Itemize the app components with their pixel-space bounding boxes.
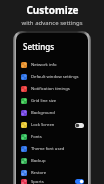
staticText: with advance settings bbox=[21, 19, 83, 27]
button[interactable]: Toggle off bbox=[75, 123, 84, 128]
staticText: Background bbox=[31, 110, 55, 116]
button[interactable]: Network info bbox=[16, 59, 88, 71]
button[interactable]: Lock Screen bbox=[16, 119, 88, 131]
staticText: Settings bbox=[23, 41, 55, 52]
button[interactable]: Restore bbox=[16, 167, 88, 179]
button[interactable]: Theme font used bbox=[16, 143, 88, 155]
staticText: Backup bbox=[31, 158, 46, 164]
staticText: Fonts bbox=[31, 134, 42, 140]
staticText: Lock Screen bbox=[31, 122, 55, 128]
staticText: Notification timings bbox=[31, 86, 70, 92]
staticText: Theme font used bbox=[31, 146, 65, 152]
button[interactable]: Backup bbox=[16, 155, 88, 167]
staticText: Network info bbox=[31, 62, 57, 68]
button[interactable]: Toggle on bbox=[75, 179, 84, 184]
staticText: Sports bbox=[31, 179, 44, 184]
staticText: Default window settings bbox=[31, 74, 79, 80]
button[interactable]: Grid line size bbox=[16, 95, 88, 107]
button[interactable]: Notification timings bbox=[16, 83, 88, 95]
button[interactable]: Fonts bbox=[16, 131, 88, 143]
button[interactable]: Sports bbox=[16, 179, 88, 184]
button[interactable]: Background bbox=[16, 107, 88, 119]
staticText: Restore bbox=[31, 170, 47, 176]
button[interactable]: Default window settings bbox=[16, 71, 88, 83]
staticText: Grid line size bbox=[31, 98, 57, 104]
staticText: Customize bbox=[26, 3, 79, 17]
